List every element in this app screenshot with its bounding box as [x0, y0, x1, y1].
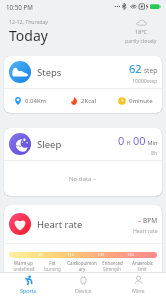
- staticText: partly cloudy: [125, 37, 157, 44]
- staticText: 10000step: [132, 77, 158, 84]
- button[interactable]: Steps: [4, 56, 162, 113]
- staticText: Strength: [103, 266, 121, 272]
- staticText: step: [144, 66, 158, 75]
- staticText: Device: [75, 287, 92, 294]
- staticText: Today: [9, 26, 48, 45]
- staticText: Sleep: [37, 138, 62, 151]
- staticText: Heart rate: [37, 218, 83, 231]
- staticText: Chaoshui: [72, 272, 92, 278]
- staticText: 10:50 PM: [6, 3, 33, 11]
- staticText: burning: [44, 266, 61, 272]
- staticText: 133: [97, 252, 105, 258]
- staticText: Min: [146, 139, 158, 147]
- staticText: BPM: [143, 216, 158, 225]
- staticText: 8h: [151, 149, 158, 156]
- staticText: limit: [137, 266, 147, 272]
- button[interactable]: Sports: [0, 273, 56, 296]
- staticText: 18℃: [135, 28, 147, 36]
- staticText: Enhanced: [102, 260, 123, 266]
- staticText: H: [125, 139, 133, 147]
- staticText: No data ~: [69, 175, 97, 183]
- staticText: Warm up: [14, 260, 33, 266]
- staticText: 00: [133, 133, 146, 148]
- staticText: 0: [118, 133, 125, 148]
- staticText: 152: [127, 252, 135, 258]
- staticText: 62: [129, 61, 142, 76]
- staticText: Heart rate: [133, 227, 158, 234]
- button[interactable]: Mine: [111, 273, 166, 296]
- staticText: 114: [67, 252, 75, 258]
- staticText: Sports: [20, 287, 37, 294]
- button[interactable]: Heart rate: [4, 205, 162, 285]
- staticText: 0.04Km: [25, 97, 47, 105]
- button[interactable]: Device: [56, 273, 111, 296]
- staticText: 0minute: [129, 97, 153, 105]
- button[interactable]: Sleep: [4, 128, 162, 196]
- staticText: Mine: [132, 287, 145, 294]
- staticText: Fat: [49, 260, 56, 266]
- staticText: Anaerobic: [132, 260, 153, 266]
- staticText: undefined: [13, 266, 35, 272]
- staticText: -: [138, 214, 141, 226]
- staticText: Steps: [37, 66, 62, 79]
- staticText: Cardiopulmonary: [67, 260, 97, 272]
- staticText: 95: [38, 252, 43, 258]
- staticText: 2Kcal: [81, 97, 96, 105]
- staticText: 12-12, Thursday: [9, 18, 48, 25]
